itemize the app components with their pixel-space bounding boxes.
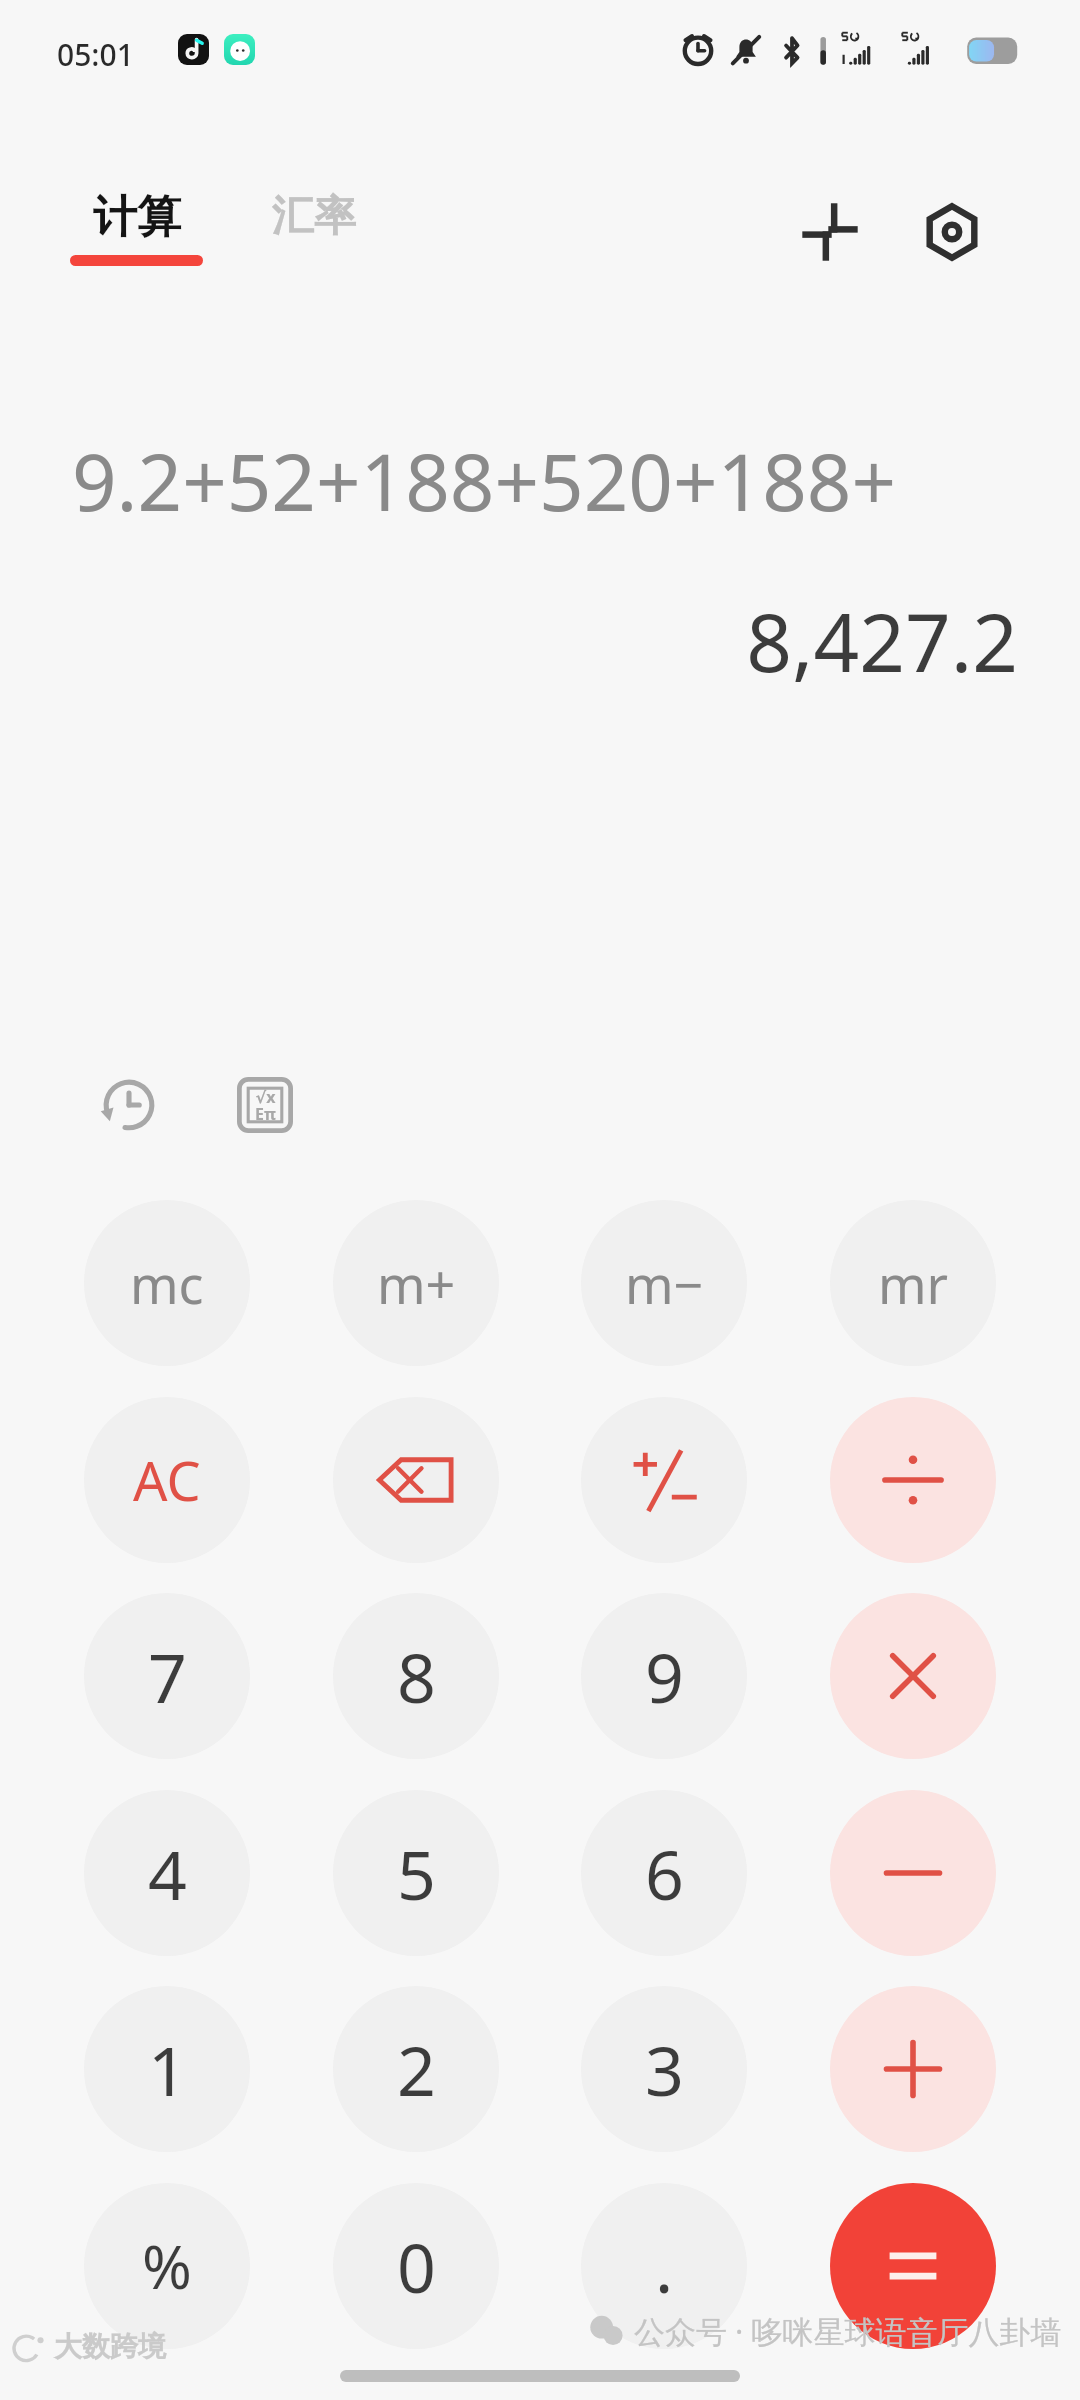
- staticText: 2: [397, 2023, 436, 2116]
- staticText: 4: [148, 1827, 187, 1920]
- button[interactable]: 8: [333, 1593, 499, 1759]
- button[interactable]: 9: [581, 1593, 747, 1759]
- button[interactable]: Equals: [830, 2183, 996, 2349]
- button[interactable]: Plus minus: [581, 1397, 747, 1563]
- button[interactable]: 1: [84, 1986, 250, 2152]
- button[interactable]: m−: [581, 1200, 747, 1366]
- staticText: m−: [625, 1248, 704, 1319]
- staticText: 1: [148, 2023, 187, 2116]
- button[interactable]: 5: [333, 1790, 499, 1956]
- staticText: 9.2+52+188+520+188+: [72, 428, 896, 534]
- button[interactable]: 计算: [66, 190, 207, 266]
- button[interactable]: 4: [84, 1790, 250, 1956]
- staticText: 7: [148, 1630, 187, 1723]
- button[interactable]: Plus: [830, 1986, 996, 2152]
- staticText: 8: [397, 1630, 436, 1723]
- staticText: 0: [397, 2220, 436, 2313]
- button[interactable]: mc: [84, 1200, 250, 1366]
- button[interactable]: History: [82, 1058, 176, 1152]
- staticText: 3: [645, 2023, 684, 2116]
- button[interactable]: Minus: [830, 1790, 996, 1956]
- staticText: 5: [397, 1827, 436, 1920]
- button[interactable]: 0: [333, 2183, 499, 2349]
- button[interactable]: Floating window: [786, 188, 874, 276]
- button[interactable]: 7: [84, 1593, 250, 1759]
- staticText: %: [142, 2225, 192, 2307]
- staticText: 公众号 · 哆咪星球语音厅八卦墙: [634, 2310, 1062, 2352]
- button[interactable]: 2: [333, 1986, 499, 2152]
- staticText: mc: [130, 1248, 204, 1319]
- staticText: 9: [645, 1630, 684, 1723]
- staticText: 05:01: [57, 34, 134, 75]
- staticText: 8,427.2: [746, 586, 1018, 695]
- button[interactable]: Multiply: [830, 1593, 996, 1759]
- button[interactable]: mr: [830, 1200, 996, 1366]
- staticText: 计算: [93, 190, 181, 245]
- staticText: mr: [878, 1248, 949, 1319]
- button[interactable]: 汇率: [268, 190, 360, 243]
- button[interactable]: Settings: [908, 188, 996, 276]
- button[interactable]: .: [581, 2183, 747, 2349]
- button[interactable]: Scientific mode: [218, 1058, 312, 1152]
- button[interactable]: Backspace: [333, 1397, 499, 1563]
- button[interactable]: Divide: [830, 1397, 996, 1563]
- button[interactable]: %: [84, 2183, 250, 2349]
- staticText: √x Eπ: [255, 1086, 276, 1125]
- button[interactable]: m+: [333, 1200, 499, 1366]
- staticText: 大数跨境: [54, 2329, 166, 2364]
- staticText: AC: [133, 1443, 201, 1517]
- button[interactable]: 6: [581, 1790, 747, 1956]
- staticText: 汇率: [272, 190, 356, 243]
- staticText: .: [655, 2220, 674, 2313]
- staticText: 6: [645, 1827, 684, 1920]
- staticText: m+: [377, 1248, 456, 1319]
- button[interactable]: AC: [84, 1397, 250, 1563]
- button[interactable]: 3: [581, 1986, 747, 2152]
